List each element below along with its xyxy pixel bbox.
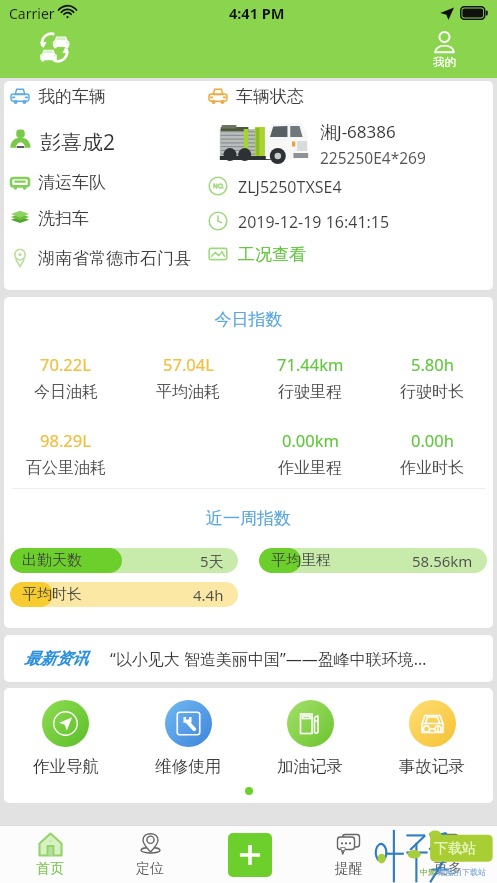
staticText: 湖南省常德市石门县 xyxy=(38,248,191,268)
staticText: 事故记录 xyxy=(399,756,465,777)
staticText: 今日油耗 xyxy=(34,382,98,402)
staticText: 车辆状态 xyxy=(236,86,304,106)
staticText: 71.44km xyxy=(277,353,344,375)
staticText: Carrier xyxy=(9,4,55,23)
staticText: 0.00h xyxy=(411,429,454,451)
staticText: 4.4h xyxy=(193,585,224,605)
staticText: 98.29L xyxy=(40,429,91,451)
staticText: 5.80h xyxy=(411,353,454,375)
staticText: 更多 xyxy=(434,860,462,878)
staticText: 作业时长 xyxy=(400,458,464,478)
button[interactable]: 首页 xyxy=(0,832,100,878)
staticText: 定位 xyxy=(136,860,164,878)
staticText: 58.56km xyxy=(412,551,473,571)
staticText: 近一周指数 xyxy=(4,508,493,529)
staticText: 提醒 xyxy=(335,860,363,878)
staticText: 作业里程 xyxy=(278,458,342,478)
staticText: “以小见大 智造美丽中国”——盈峰中联环境… xyxy=(110,648,427,670)
staticText: 4:41 PM xyxy=(229,3,285,23)
staticText: 百公里油耗 xyxy=(26,458,106,478)
staticText: 平均里程 xyxy=(271,551,331,570)
button[interactable]: 切换车辆 xyxy=(38,31,71,64)
button[interactable]: 提醒 xyxy=(299,832,398,878)
staticText: 0.00km xyxy=(282,429,339,451)
staticText: 行驶里程 xyxy=(278,382,342,402)
staticText: 我的车辆 xyxy=(38,86,106,106)
staticText: 首页 xyxy=(36,860,64,878)
staticText: ZLJ5250TXSE4 xyxy=(238,176,342,196)
staticText: 洗扫车 xyxy=(38,208,89,228)
button[interactable]: 出勤天数 xyxy=(10,548,238,573)
staticText: 70.22L xyxy=(40,353,91,375)
staticText: 作业导航 xyxy=(33,756,99,777)
staticText: 加油记录 xyxy=(277,756,343,777)
staticText: 今日指数 xyxy=(4,309,493,330)
staticText: 最酷的下载站 xyxy=(438,867,486,877)
staticText: 下载站 xyxy=(434,840,476,858)
staticText: 最新资讯 xyxy=(24,649,88,669)
button[interactable]: 更多 xyxy=(398,832,497,878)
staticText: 中聚 xyxy=(420,867,436,877)
staticText: 平均油耗 xyxy=(156,382,220,402)
button[interactable]: 新增 xyxy=(228,833,272,877)
button[interactable]: 平均时长 xyxy=(10,582,238,607)
staticText: 出勤天数 xyxy=(22,551,82,570)
staticText: 2019-12-19 16:41:15 xyxy=(238,211,390,231)
button[interactable]: 作业导航 xyxy=(4,700,127,777)
button[interactable]: 事故记录 xyxy=(371,700,493,777)
button[interactable]: 定位 xyxy=(100,832,200,878)
button[interactable]: 加油记录 xyxy=(249,700,371,777)
staticText: 225250E4*269 xyxy=(320,147,426,168)
button[interactable]: 最新资讯 xyxy=(24,635,485,682)
staticText: 湘J-68386 xyxy=(320,120,396,143)
button[interactable]: 维修使用 xyxy=(127,700,249,777)
button[interactable]: 我的 xyxy=(424,31,464,69)
staticText: 57.04L xyxy=(163,353,214,375)
button[interactable]: 平均里程 xyxy=(259,548,487,573)
staticText: 5天 xyxy=(200,551,224,571)
staticText: 维修使用 xyxy=(155,756,221,777)
staticText: 平均时长 xyxy=(22,585,82,604)
staticText: 我的 xyxy=(433,55,456,69)
staticText: 行驶时长 xyxy=(400,382,464,402)
staticText: 工况查看 xyxy=(238,244,306,264)
staticText: 清运车队 xyxy=(38,172,106,192)
staticText: 彭喜成2 xyxy=(40,128,116,151)
